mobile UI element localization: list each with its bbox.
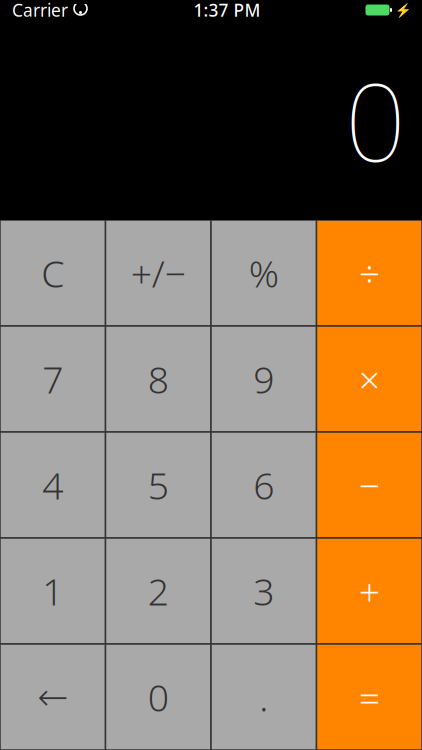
button[interactable]: % xyxy=(212,221,316,325)
staticText: 1 xyxy=(42,566,63,616)
button[interactable]: Minus xyxy=(317,433,421,537)
staticText: 3 xyxy=(253,566,274,616)
staticText: 8 xyxy=(148,354,169,404)
button[interactable]: 5 xyxy=(106,433,210,537)
staticText: ⚡ xyxy=(395,2,412,18)
staticText: ← xyxy=(37,676,68,718)
staticText: 2 xyxy=(148,566,169,616)
button[interactable]: C xyxy=(1,221,105,325)
staticText: 0 xyxy=(345,49,406,191)
button[interactable]: Multiply xyxy=(317,327,421,431)
staticText: = xyxy=(359,672,380,722)
staticText: 9 xyxy=(253,354,274,404)
button[interactable]: 1 xyxy=(1,539,105,643)
staticText: % xyxy=(249,248,279,298)
button[interactable]: +/− xyxy=(106,221,210,325)
staticText: ÷ xyxy=(359,248,380,298)
button[interactable]: 0 xyxy=(106,645,210,749)
button[interactable]: 4 xyxy=(1,433,105,537)
button[interactable]: Plus xyxy=(317,539,421,643)
staticText: 0 xyxy=(148,672,169,722)
staticText: 4 xyxy=(42,460,63,510)
button[interactable]: 6 xyxy=(212,433,316,537)
button[interactable]: 8 xyxy=(106,327,210,431)
staticText: × xyxy=(359,354,380,404)
staticText: +/− xyxy=(131,248,186,298)
button[interactable]: Equals xyxy=(317,645,421,749)
staticText: C xyxy=(41,248,64,298)
button[interactable]: ← xyxy=(1,645,105,749)
staticText: 1:37 PM xyxy=(193,0,260,21)
button[interactable]: 9 xyxy=(212,327,316,431)
button[interactable]: 2 xyxy=(106,539,210,643)
button[interactable]: Divide xyxy=(317,221,421,325)
staticText: + xyxy=(359,566,380,616)
staticText: 7 xyxy=(42,354,63,404)
button[interactable]: 3 xyxy=(212,539,316,643)
staticText: 5 xyxy=(148,460,169,510)
button[interactable]: 7 xyxy=(1,327,105,431)
button[interactable]: . xyxy=(212,645,316,749)
staticText: 6 xyxy=(253,460,274,510)
staticText: . xyxy=(259,672,268,722)
staticText: Carrier xyxy=(12,0,68,21)
staticText: − xyxy=(359,460,380,510)
